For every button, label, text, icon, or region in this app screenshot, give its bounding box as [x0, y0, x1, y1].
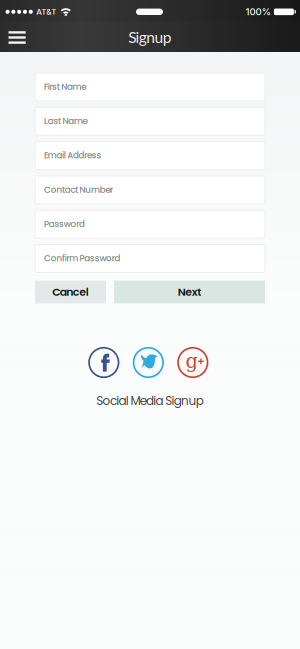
button[interactable]: Next [114, 280, 265, 303]
textField[interactable]: Contact Number [44, 183, 265, 196]
staticText: AT&T [36, 7, 56, 17]
button[interactable]: Sign up with Google Plus [178, 347, 208, 377]
staticText: Social Media Signup [96, 392, 204, 409]
textField[interactable]: Last Name [44, 115, 265, 127]
textField[interactable]: Confirm Password [44, 252, 265, 264]
staticText: Email Address [44, 149, 101, 161]
button[interactable]: Sign up with Twitter [133, 347, 163, 377]
staticText: Confirm Password [44, 252, 120, 264]
button[interactable]: Sign up with Facebook [89, 347, 119, 377]
textField[interactable]: Email Address [44, 149, 265, 161]
staticText: Email Address [44, 149, 101, 161]
textField[interactable]: First Name [44, 81, 265, 93]
button[interactable]: Menu [0, 29, 26, 44]
staticText: Contact Number [44, 183, 113, 196]
staticText: 100% [245, 6, 271, 18]
staticText: Password [44, 218, 85, 230]
staticText: First Name [44, 81, 86, 93]
staticText: Password [44, 218, 85, 230]
staticText: Last Name [44, 115, 88, 127]
staticText: Next [178, 284, 201, 300]
staticText: Confirm Password [44, 252, 120, 264]
staticText: g [186, 350, 198, 373]
staticText: Last Name [44, 115, 88, 127]
button[interactable]: Cancel [35, 280, 106, 303]
staticText: Signup [128, 28, 172, 46]
staticText: Cancel [52, 284, 89, 300]
staticText: Contact Number [44, 183, 113, 196]
textField[interactable]: Password [44, 218, 265, 230]
staticText: First Name [44, 81, 86, 93]
